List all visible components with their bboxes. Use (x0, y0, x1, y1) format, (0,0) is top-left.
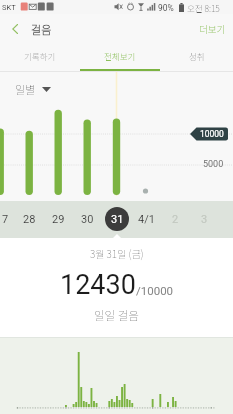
button[interactable]: 29 (45, 206, 71, 232)
staticText: 31 (111, 213, 124, 226)
button[interactable]: 31 (104, 206, 130, 232)
button[interactable]: 전체보기 (80, 44, 160, 72)
staticText: 7 (2, 213, 9, 226)
staticText: 3 (201, 213, 208, 226)
button[interactable]: 4/1 (133, 206, 159, 232)
staticText: 오전 8:15 (187, 2, 220, 14)
button[interactable]: 30 (74, 206, 100, 232)
button[interactable]: 3 (191, 206, 217, 232)
staticText: 10000 (200, 129, 224, 139)
staticText: 12430 (60, 269, 136, 301)
staticText: 일일 걸음 (94, 307, 139, 324)
button[interactable]: 2 (162, 206, 188, 232)
staticText: 걸음 (31, 21, 52, 37)
button[interactable]: 성취 (160, 44, 233, 72)
staticText: 성취 (189, 50, 205, 62)
staticText: 일별 (15, 81, 36, 97)
button[interactable]: 7 (0, 206, 18, 232)
button[interactable]: 더보기 (192, 15, 233, 43)
staticText: 4/1 (138, 213, 155, 226)
staticText: 더보기 (199, 22, 226, 36)
button[interactable]: 일별 (15, 81, 51, 97)
staticText: 30 (81, 213, 94, 226)
staticText: 29 (52, 213, 65, 226)
staticText: 90% (158, 3, 174, 13)
staticText: 2 (172, 213, 179, 226)
staticText: SKT (2, 3, 16, 12)
staticText: 3월 31일 (금) (90, 246, 144, 260)
staticText: 기록하기 (24, 50, 56, 62)
staticText: 전체보기 (104, 50, 136, 62)
staticText: /10000 (136, 284, 174, 297)
staticText: 5000 (203, 159, 224, 170)
button[interactable]: 기록하기 (0, 44, 80, 72)
staticText: 28 (23, 213, 36, 226)
button[interactable]: 28 (16, 206, 42, 232)
button[interactable]: Back (4, 14, 26, 44)
